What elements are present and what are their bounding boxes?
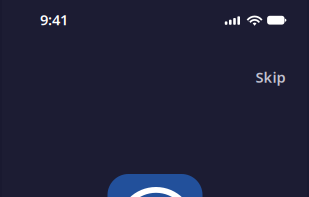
staticText: Skip: [255, 67, 285, 87]
button[interactable]: Skip: [248, 63, 292, 91]
staticText: 9:41: [40, 10, 68, 29]
